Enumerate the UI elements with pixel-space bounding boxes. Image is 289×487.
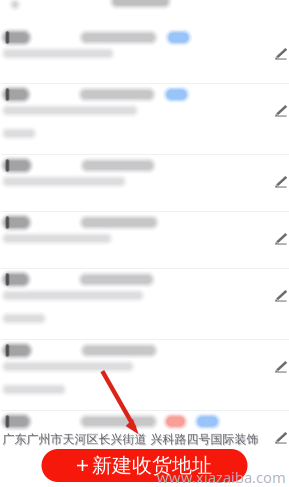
staticText: 新建收货地址	[92, 453, 212, 478]
button[interactable]: 新建收货地址	[41, 449, 247, 482]
staticText: www.xiazaiba.com	[157, 467, 286, 487]
button[interactable]	[0, 212, 289, 268]
button[interactable]	[0, 27, 289, 83]
staticText: 广东广州市天河区长兴街道 兴科路四号国际装饰	[2, 432, 258, 447]
button[interactable]	[0, 84, 289, 154]
staticText: 广东广州市天河区长兴街道 兴科路四号国际装饰	[3, 433, 259, 447]
button[interactable]	[0, 340, 289, 410]
button[interactable]	[0, 155, 289, 211]
button[interactable]: 广东广州市天河区长兴街道 兴科路四号国际装饰	[0, 411, 289, 467]
button[interactable]	[0, 269, 289, 339]
